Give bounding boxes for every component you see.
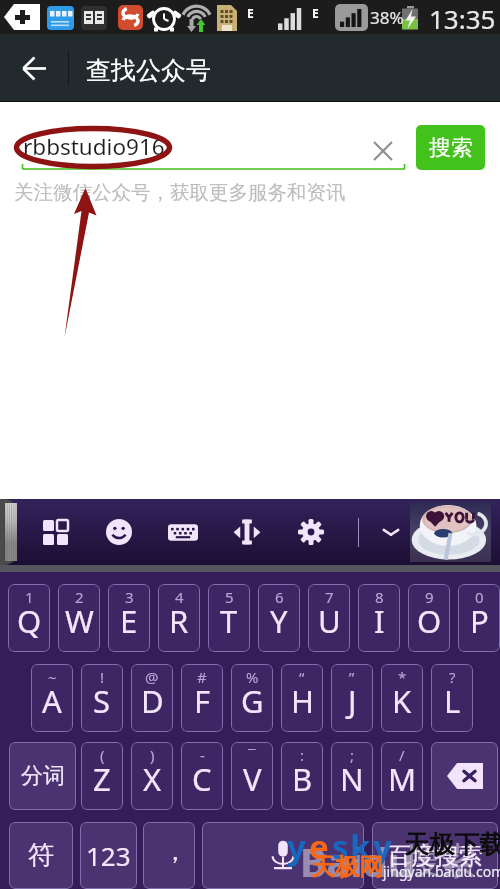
staticText: G	[241, 680, 264, 722]
staticText: E	[312, 5, 319, 21]
staticText: 6	[275, 587, 284, 607]
button[interactable]: (	[81, 742, 123, 810]
staticText: 符	[28, 839, 54, 872]
staticText: 搜索	[404, 838, 476, 883]
button[interactable]: 7	[308, 584, 350, 652]
staticText: y	[287, 824, 306, 869]
staticText: C	[192, 758, 212, 800]
staticText: *	[398, 667, 407, 687]
button[interactable]: 1	[8, 584, 50, 652]
staticText: 天极下载	[404, 829, 500, 860]
button[interactable]: #	[181, 664, 223, 732]
staticText: ;	[350, 745, 355, 765]
button[interactable]: @	[131, 664, 173, 732]
staticText: U	[318, 600, 341, 642]
button[interactable]: ~	[31, 664, 73, 732]
staticText: 搜索	[429, 134, 473, 162]
staticText: jingyan.baidu.com	[383, 862, 500, 881]
button[interactable]: )	[131, 742, 173, 810]
staticText: L	[444, 680, 461, 722]
staticText: M	[388, 758, 417, 800]
staticText: 百度搜索	[387, 841, 483, 871]
button[interactable]: 分词	[9, 742, 76, 810]
button[interactable]: Move cursor	[223, 499, 271, 565]
button[interactable]: ，	[143, 822, 195, 889]
button[interactable]: !	[81, 664, 123, 732]
button[interactable]: 123	[80, 822, 137, 889]
staticText: A	[42, 680, 62, 722]
staticText: 天极网	[311, 852, 383, 882]
staticText: )	[150, 745, 155, 765]
button[interactable]: ?	[431, 664, 473, 732]
button[interactable]: *	[381, 664, 423, 732]
button[interactable]: 8	[358, 584, 400, 652]
button[interactable]: Keyboard	[159, 499, 207, 565]
staticText: X	[143, 758, 162, 800]
button[interactable]: Clear	[366, 134, 400, 168]
staticText: Q	[17, 600, 42, 642]
staticText: rbbstudio916	[23, 131, 165, 162]
staticText: k	[350, 824, 371, 869]
staticText: ，	[162, 835, 188, 868]
staticText: V	[243, 758, 262, 800]
staticText: @	[145, 667, 159, 687]
button[interactable]: /	[381, 742, 423, 810]
staticText: ~	[48, 667, 57, 687]
staticText: s	[332, 824, 349, 869]
staticText: K	[392, 680, 412, 722]
button[interactable]: :	[281, 742, 323, 810]
staticText: 关注微信公众号，获取更多服务和资讯	[14, 180, 346, 205]
button[interactable]: Settings	[287, 499, 335, 565]
button[interactable]: 9	[408, 584, 450, 652]
staticText: ?	[449, 667, 456, 687]
button[interactable]: ;	[331, 742, 373, 810]
staticText: E	[120, 600, 138, 642]
staticText: B	[292, 758, 313, 800]
button[interactable]: 百度搜索	[372, 822, 498, 889]
button[interactable]: 4	[158, 584, 200, 652]
button[interactable]: Backspace	[431, 742, 498, 810]
button[interactable]: ¯	[231, 742, 273, 810]
staticText: 9	[425, 587, 434, 607]
staticText: J	[348, 680, 357, 722]
button[interactable]: Hide keyboard	[367, 499, 415, 565]
staticText: Z	[93, 758, 111, 800]
staticText: %	[246, 667, 259, 687]
staticText: “	[299, 667, 305, 687]
staticText: S	[93, 680, 111, 722]
staticText: !	[100, 667, 105, 687]
button[interactable]: “	[281, 664, 323, 732]
button[interactable]: ”	[331, 664, 373, 732]
button[interactable]: 2	[58, 584, 100, 652]
staticText: E	[247, 5, 254, 21]
staticText: P	[470, 600, 489, 642]
button[interactable]: 符	[9, 822, 73, 889]
staticText: 1	[25, 587, 34, 607]
button[interactable]: -	[181, 742, 223, 810]
button[interactable]: 搜索	[416, 125, 485, 170]
staticText: D	[141, 680, 164, 722]
staticText: 7	[325, 587, 334, 607]
button[interactable]: 6	[258, 584, 300, 652]
staticText: I	[374, 600, 385, 642]
button[interactable]: Back	[0, 34, 68, 102]
button[interactable]: 5	[208, 584, 250, 652]
staticText: T	[220, 600, 238, 642]
button[interactable]: Keyboard layouts	[31, 499, 79, 565]
staticText: ¯	[248, 745, 256, 765]
staticText: 3	[125, 587, 134, 607]
button[interactable]: 3	[108, 584, 150, 652]
staticText: 8	[375, 587, 384, 607]
staticText: 38%	[370, 6, 404, 29]
button[interactable]: Voice input	[202, 822, 364, 889]
staticText: H	[291, 680, 314, 722]
staticText: O	[417, 600, 442, 642]
button[interactable]: 0	[458, 584, 500, 652]
staticText: e	[309, 824, 329, 869]
staticText: 123	[86, 838, 131, 873]
button[interactable]: %	[231, 664, 273, 732]
staticText: F	[194, 680, 211, 722]
button[interactable]	[410, 502, 491, 562]
button[interactable]: Emoji	[95, 499, 143, 565]
staticText: N	[340, 758, 364, 800]
